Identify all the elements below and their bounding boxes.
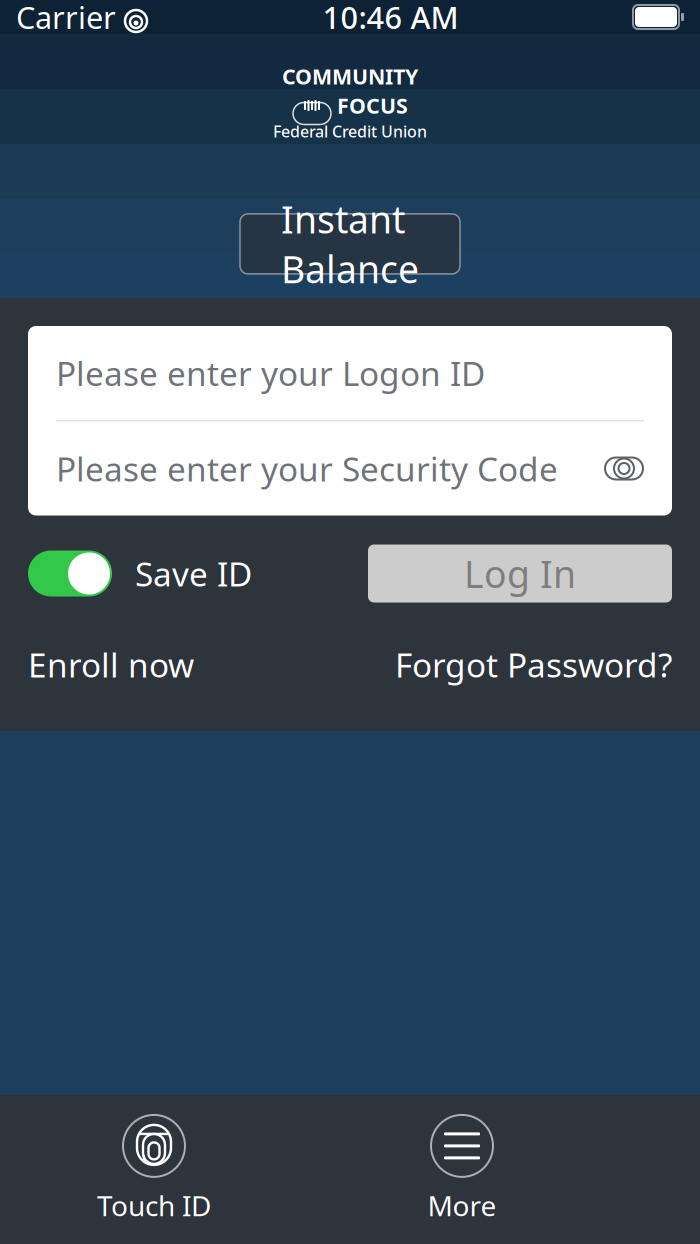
staticText: Touch ID [97, 1187, 211, 1224]
button[interactable]: Touch ID [84, 1107, 224, 1232]
staticText: Forgot Password? [395, 642, 672, 687]
button[interactable]: Save ID [28, 550, 252, 596]
button[interactable]: Instant Balance [240, 214, 460, 274]
staticText: Enroll now [28, 642, 194, 687]
staticText: Log In [464, 549, 576, 598]
button[interactable]: Forgot Password? [395, 642, 672, 687]
staticText: Please enter your Logon ID [56, 351, 485, 395]
staticText: Save ID [135, 551, 252, 596]
staticText: Instant Balance [281, 194, 419, 293]
button[interactable]: Please enter your Logon ID [28, 326, 672, 420]
staticText: COMMUNITY [282, 62, 418, 90]
button[interactable]: More [392, 1107, 532, 1232]
button[interactable]: Enroll now [28, 642, 194, 687]
staticText: Carrier [16, 0, 116, 37]
staticText: More [427, 1187, 496, 1224]
staticText: Please enter your Security Code [56, 446, 558, 491]
staticText: 10:46 AM [322, 0, 458, 37]
button[interactable]: Please enter your Security Code [28, 421, 672, 515]
staticText: Federal Credit Union [273, 121, 427, 142]
staticText: FOCUS [337, 91, 408, 120]
button[interactable]: Log In [368, 544, 672, 602]
